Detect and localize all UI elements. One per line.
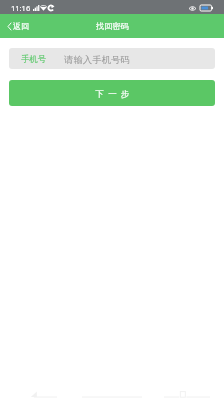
staticText: 请输入手机号码 xyxy=(64,54,130,66)
button[interactable]: 返回 xyxy=(0,17,37,35)
staticText: 返回 xyxy=(13,21,29,31)
staticText: 下一步 xyxy=(95,89,134,100)
button[interactable]: 手机号 xyxy=(9,48,215,69)
staticText: 11:16 xyxy=(11,3,31,13)
staticText: 找回密码 xyxy=(96,21,129,31)
staticText: 手机号 xyxy=(21,54,47,65)
button[interactable]: 下一步 xyxy=(9,80,215,106)
